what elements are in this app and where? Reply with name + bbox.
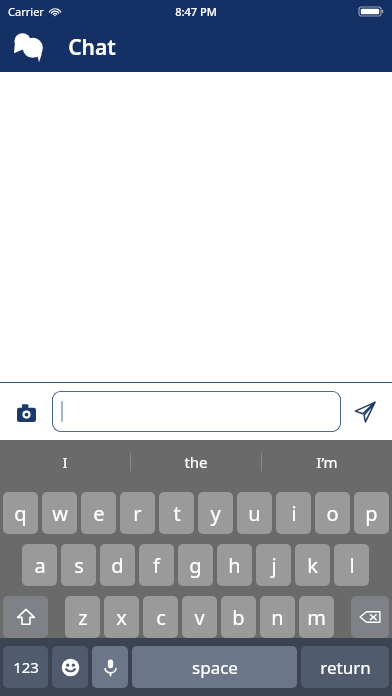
button[interactable]: return — [301, 646, 389, 688]
staticText: j — [271, 552, 277, 579]
staticText: i — [291, 500, 297, 527]
staticText: the — [184, 452, 208, 472]
staticText: space — [192, 656, 238, 679]
staticText: t — [173, 500, 181, 527]
staticText: m — [307, 604, 326, 631]
staticText: p — [365, 500, 378, 527]
staticText: l — [349, 552, 355, 579]
button[interactable]: the — [131, 440, 261, 484]
button[interactable]: c — [143, 596, 178, 638]
button[interactable]: Dictation — [92, 646, 128, 688]
button[interactable]: j — [256, 544, 291, 586]
staticText: e — [93, 500, 105, 527]
button[interactable]: n — [260, 596, 295, 638]
button[interactable]: Send — [344, 391, 386, 433]
button[interactable]: Emoji — [52, 646, 88, 688]
button[interactable]: v — [182, 596, 217, 638]
button[interactable]: d — [100, 544, 135, 586]
button[interactable]: x — [104, 596, 139, 638]
staticText: b — [232, 604, 245, 631]
button[interactable]: g — [178, 544, 213, 586]
button[interactable]: r — [120, 492, 155, 534]
staticText: v — [194, 604, 205, 631]
staticText: a — [34, 552, 46, 579]
button[interactable]: p — [354, 492, 389, 534]
button[interactable]: l — [334, 544, 369, 586]
staticText: I — [62, 452, 68, 472]
button[interactable]: Backspace — [351, 596, 389, 638]
button[interactable]: Camera — [8, 394, 44, 430]
button[interactable] — [52, 391, 341, 432]
staticText: x — [116, 604, 127, 631]
staticText: Carrier — [8, 4, 44, 19]
staticText: I’m — [316, 452, 338, 472]
staticText: Chat — [68, 33, 116, 62]
button[interactable]: a — [22, 544, 57, 586]
staticText: h — [228, 552, 241, 579]
staticText: k — [307, 552, 318, 579]
button[interactable]: e — [81, 492, 116, 534]
button[interactable]: y — [198, 492, 233, 534]
staticText: s — [74, 552, 84, 579]
staticText: o — [326, 500, 339, 527]
staticText: 8:47 PM — [175, 4, 217, 19]
staticText: n — [271, 604, 284, 631]
staticText: y — [210, 500, 221, 527]
button[interactable]: i — [276, 492, 311, 534]
button[interactable]: z — [65, 596, 100, 638]
button[interactable]: s — [61, 544, 96, 586]
button[interactable]: f — [139, 544, 174, 586]
staticText: r — [133, 500, 142, 527]
button[interactable]: w — [42, 492, 77, 534]
button[interactable]: 123 — [3, 646, 48, 688]
staticText: c — [156, 604, 166, 631]
button[interactable]: Shift — [3, 596, 48, 638]
button[interactable]: space — [132, 646, 297, 688]
staticText: g — [189, 552, 202, 579]
staticText: u — [248, 500, 261, 527]
staticText: d — [111, 552, 124, 579]
button[interactable]: u — [237, 492, 272, 534]
button[interactable]: I — [0, 440, 130, 484]
staticText: w — [52, 500, 68, 527]
button[interactable]: o — [315, 492, 350, 534]
button[interactable]: t — [159, 492, 194, 534]
staticText: f — [153, 552, 160, 579]
other: Chat — [10, 28, 48, 66]
staticText: q — [14, 500, 27, 527]
staticText: return — [320, 656, 371, 679]
button[interactable]: h — [217, 544, 252, 586]
button[interactable]: b — [221, 596, 256, 638]
staticText: z — [78, 604, 88, 631]
button[interactable]: k — [295, 544, 330, 586]
staticText: 123 — [13, 657, 39, 677]
button[interactable]: I’m — [262, 440, 392, 484]
button[interactable]: q — [3, 492, 38, 534]
button[interactable]: m — [299, 596, 334, 638]
